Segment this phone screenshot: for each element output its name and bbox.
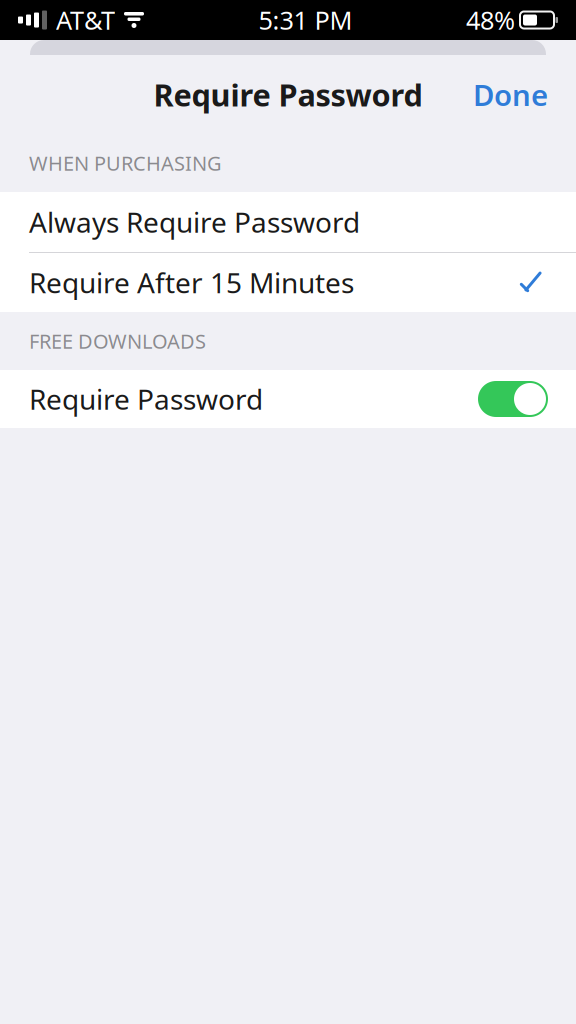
staticText: Always Require Password bbox=[29, 203, 360, 241]
staticText: 48% bbox=[466, 3, 515, 37]
staticText: FREE DOWNLOADS bbox=[29, 328, 206, 354]
staticText: Require After 15 Minutes bbox=[29, 264, 354, 301]
button[interactable]: Always Require Password bbox=[0, 192, 576, 252]
staticText: Done bbox=[473, 75, 548, 114]
staticText: Require Password bbox=[29, 380, 263, 418]
staticText: 5:31 PM bbox=[258, 3, 352, 37]
staticText: Require Password bbox=[153, 74, 422, 115]
button[interactable]: Done bbox=[463, 67, 558, 122]
staticText: WHEN PURCHASING bbox=[29, 150, 222, 176]
staticText: AT&T bbox=[56, 3, 115, 37]
button[interactable]: Require After 15 Minutes bbox=[0, 253, 576, 312]
button[interactable]: Require Password bbox=[0, 370, 576, 428]
